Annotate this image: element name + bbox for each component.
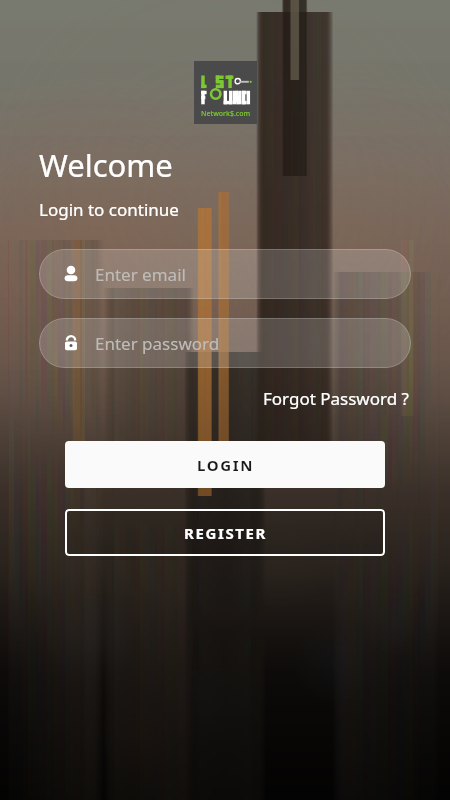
staticText: LOGIN (197, 455, 254, 475)
button[interactable]: LOGIN (65, 441, 385, 488)
button[interactable]: Enter password (39, 318, 411, 368)
staticText: REGISTER (184, 523, 267, 543)
button[interactable]: REGISTER (65, 509, 385, 556)
staticText: Login to continue (39, 198, 179, 221)
button[interactable]: Enter email (39, 249, 411, 299)
staticText: Forgot Password ? (263, 387, 409, 410)
staticText: Enter password (95, 332, 220, 355)
staticText: Network$.com (201, 109, 251, 119)
staticText: Welcome (39, 144, 173, 186)
button[interactable]: Forgot Password ? (261, 384, 411, 413)
staticText: Enter email (95, 263, 186, 286)
